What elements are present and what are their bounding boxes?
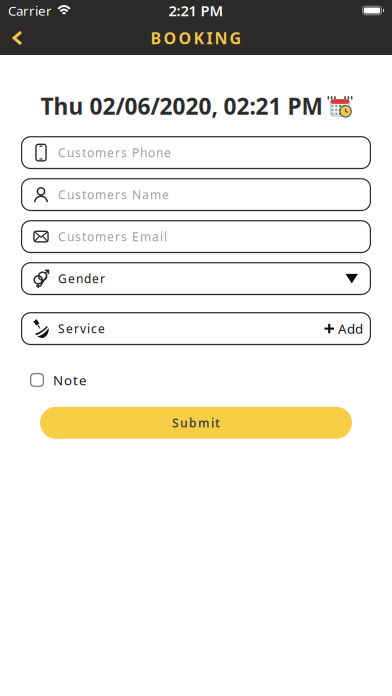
staticText: N o t e bbox=[53, 371, 87, 389]
button[interactable]: Customers Phone bbox=[21, 136, 371, 169]
staticText: Add bbox=[338, 320, 363, 337]
button[interactable]: Add Service bbox=[21, 312, 371, 345]
staticText: B O O K I N G bbox=[150, 27, 241, 49]
staticText: C u s t o m e r s N a m e bbox=[58, 187, 169, 202]
staticText: Thu 02/06/2020, 02:21 PM bbox=[40, 91, 322, 121]
button[interactable]: Customers Name bbox=[21, 178, 371, 211]
button[interactable]: Customers Email bbox=[21, 220, 371, 253]
staticText: C u s t o m e r s E m a i l bbox=[58, 229, 167, 244]
staticText: 2:21 PM bbox=[168, 1, 223, 20]
staticText: C u s t o m e r s P h o n e bbox=[58, 145, 171, 160]
staticText: Carrier bbox=[8, 2, 52, 19]
staticText: G e n d e r bbox=[58, 271, 105, 286]
staticText: S u b m i t bbox=[172, 415, 220, 431]
staticText: S e r v i c e bbox=[58, 321, 105, 336]
button[interactable]: Gender bbox=[21, 262, 371, 295]
button[interactable]: S u b m i t bbox=[40, 407, 352, 439]
button[interactable]: Note bbox=[30, 371, 87, 389]
button[interactable]: Back bbox=[0, 22, 23, 53]
